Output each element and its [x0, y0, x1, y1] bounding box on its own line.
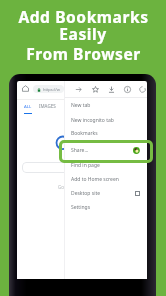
staticText: Add Bookmarks [18, 6, 149, 27]
staticText: ALL [24, 103, 32, 109]
button[interactable]: Find in page [65, 159, 147, 171]
staticText: Find in page [71, 162, 100, 169]
button[interactable] [22, 162, 77, 173]
staticText: Share... [71, 147, 89, 154]
button[interactable]: Page info [122, 84, 132, 94]
button[interactable]: New tab [65, 99, 147, 111]
staticText: Settings [71, 204, 91, 211]
button[interactable]: Forward [73, 84, 83, 94]
button[interactable]: Share... [65, 144, 147, 156]
button[interactable]: Add to Home screen [65, 173, 147, 185]
staticText: Add to Home screen [71, 176, 119, 183]
button[interactable]: Share [59, 140, 153, 163]
staticText: Desktop site [71, 190, 101, 197]
button[interactable]: Bookmarks [65, 127, 147, 139]
button[interactable]: Download [106, 84, 116, 94]
staticText: IMAGES [39, 103, 56, 109]
button[interactable]: Settings [65, 201, 147, 213]
button[interactable]: Home [21, 84, 30, 93]
button[interactable]: Reload [137, 84, 147, 94]
staticText: Easily [59, 23, 107, 44]
staticText: Goo [58, 184, 67, 190]
button[interactable]: ALL [24, 103, 32, 114]
button[interactable]: https://w [33, 85, 64, 93]
staticText: Bookmarks [71, 130, 98, 137]
button[interactable]: New incognito tab [65, 114, 147, 126]
button[interactable]: Desktop site [65, 187, 147, 199]
staticText: From Browser [26, 43, 141, 64]
staticText: New tab [71, 102, 91, 109]
button[interactable]: IMAGES [39, 103, 56, 109]
staticText: https://w [43, 87, 60, 92]
button[interactable]: Bookmark [90, 84, 100, 94]
staticText: New incognito tab [71, 117, 114, 124]
